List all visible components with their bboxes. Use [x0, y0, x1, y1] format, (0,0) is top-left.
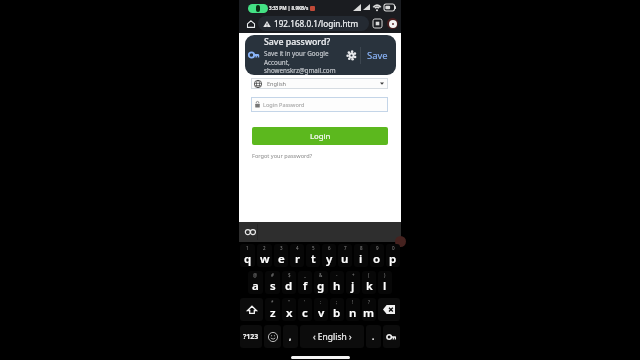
- button[interactable]: Emoji: [264, 325, 281, 348]
- staticText: .: [372, 331, 375, 342]
- staticText: ): [384, 272, 386, 278]
- staticText: ‹ English ›: [313, 331, 352, 343]
- staticText: 3: [280, 245, 283, 251]
- button[interactable]: $: [282, 271, 296, 294]
- button[interactable]: ': [298, 298, 312, 321]
- button[interactable]: 6: [322, 244, 336, 267]
- button[interactable]: Login: [252, 127, 388, 145]
- button[interactable]: Password suggestion: [243, 225, 257, 239]
- staticText: 0: [392, 245, 395, 251]
- button[interactable]: Account: [386, 17, 399, 30]
- staticText: (: [368, 272, 370, 278]
- other: Backspace: [383, 305, 395, 314]
- button[interactable]: 5: [306, 244, 320, 267]
- staticText: Login: [310, 131, 331, 142]
- staticText: ?123: [243, 332, 259, 342]
- staticText: z: [270, 305, 276, 321]
- button[interactable]: @: [248, 271, 263, 294]
- button[interactable]: 1: [240, 244, 255, 267]
- staticText: 192.168.0.1/login.htm: [274, 18, 359, 29]
- staticText: o: [373, 251, 381, 267]
- staticText: i: [359, 251, 363, 267]
- staticText: *: [271, 299, 274, 305]
- staticText: g: [317, 278, 325, 294]
- staticText: y: [326, 251, 333, 267]
- staticText: b: [333, 305, 341, 321]
- staticText: a: [252, 278, 259, 294]
- button[interactable]: ): [378, 271, 392, 294]
- staticText: ,: [289, 331, 292, 342]
- staticText: 4: [296, 245, 299, 251]
- button[interactable]: *: [265, 298, 280, 321]
- button[interactable]: _: [298, 271, 312, 294]
- button[interactable]: Forgot your password?: [252, 151, 313, 161]
- staticText: Save it in your Google Account, showensk…: [264, 49, 342, 75]
- button[interactable]: 192.168.0.1/login.htm: [258, 16, 369, 31]
- staticText: d: [285, 278, 293, 294]
- staticText: q: [244, 251, 252, 267]
- staticText: c: [302, 305, 308, 321]
- button[interactable]: Password settings: [344, 48, 358, 62]
- button[interactable]: 7: [338, 244, 352, 267]
- button[interactable]: ;: [330, 298, 344, 321]
- staticText: Login Password: [263, 101, 305, 109]
- staticText: Forgot your password?: [252, 152, 313, 160]
- button[interactable]: Home: [244, 17, 258, 31]
- button[interactable]: .: [366, 325, 381, 348]
- button[interactable]: 3: [274, 244, 288, 267]
- button[interactable]: 8: [354, 244, 368, 267]
- button[interactable]: ,: [283, 325, 298, 348]
- button[interactable]: :: [314, 298, 328, 321]
- staticText: _: [304, 272, 306, 278]
- staticText: t: [311, 251, 316, 267]
- button[interactable]: &: [314, 271, 328, 294]
- other: Shift: [247, 305, 257, 315]
- button[interactable]: !: [346, 298, 360, 321]
- staticText: ": [288, 299, 290, 305]
- staticText: English: [267, 80, 287, 88]
- staticText: ': [304, 299, 306, 305]
- staticText: e: [278, 251, 285, 267]
- button[interactable]: 4: [290, 244, 304, 267]
- button[interactable]: Login Password: [251, 97, 388, 112]
- button[interactable]: Tabs: [371, 17, 384, 30]
- staticText: 5: [312, 245, 315, 251]
- staticText: m: [363, 305, 375, 321]
- button[interactable]: Password: [383, 325, 400, 348]
- staticText: Save password?: [264, 36, 331, 48]
- button[interactable]: Save: [364, 45, 391, 66]
- button[interactable]: (: [362, 271, 376, 294]
- staticText: ;: [336, 299, 338, 305]
- button[interactable]: #: [265, 271, 280, 294]
- staticText: x: [286, 305, 293, 321]
- staticText: 1: [246, 245, 249, 251]
- staticText: &: [319, 272, 323, 278]
- staticText: Save: [367, 49, 388, 62]
- other: Emoji: [268, 332, 278, 342]
- button[interactable]: 0: [386, 244, 400, 267]
- staticText: ?: [368, 299, 370, 305]
- staticText: k: [366, 278, 373, 294]
- staticText: u: [341, 251, 349, 267]
- button[interactable]: ?: [362, 298, 376, 321]
- button[interactable]: Shift: [240, 298, 263, 321]
- staticText: +: [352, 272, 355, 278]
- staticText: h: [333, 278, 341, 294]
- staticText: #: [271, 272, 274, 278]
- button[interactable]: ‹ English ›: [300, 325, 364, 348]
- button[interactable]: English: [251, 78, 388, 89]
- staticText: r: [295, 251, 300, 267]
- button[interactable]: ": [282, 298, 296, 321]
- staticText: 2: [263, 245, 266, 251]
- button[interactable]: ?123: [240, 325, 262, 348]
- staticText: j: [351, 278, 355, 294]
- button[interactable]: Backspace: [378, 298, 400, 321]
- button[interactable]: 2: [257, 244, 272, 267]
- other: Password: [387, 334, 396, 340]
- button[interactable]: -: [330, 271, 344, 294]
- button[interactable]: 9: [370, 244, 384, 267]
- staticText: f: [303, 278, 308, 294]
- staticText: s: [270, 278, 276, 294]
- button[interactable]: +: [346, 271, 360, 294]
- staticText: p: [389, 251, 397, 267]
